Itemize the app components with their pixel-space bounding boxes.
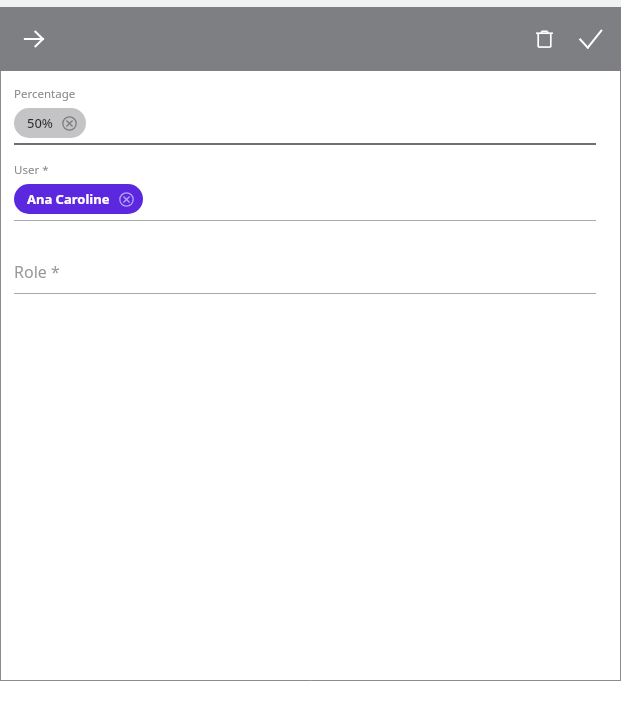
staticText: Ana Caroline	[27, 190, 110, 208]
button[interactable]: Forward	[10, 15, 58, 63]
staticText: 50%	[27, 114, 53, 132]
button[interactable]: Ana Caroline	[14, 184, 143, 214]
staticText: Role *	[14, 261, 60, 283]
button[interactable]: Save	[567, 16, 613, 62]
staticText: User *	[14, 162, 49, 178]
button[interactable]: 50%	[14, 108, 86, 138]
staticText: Percentage	[14, 86, 76, 102]
button[interactable]: Delete	[521, 16, 567, 62]
button[interactable]: Role *	[14, 259, 596, 285]
